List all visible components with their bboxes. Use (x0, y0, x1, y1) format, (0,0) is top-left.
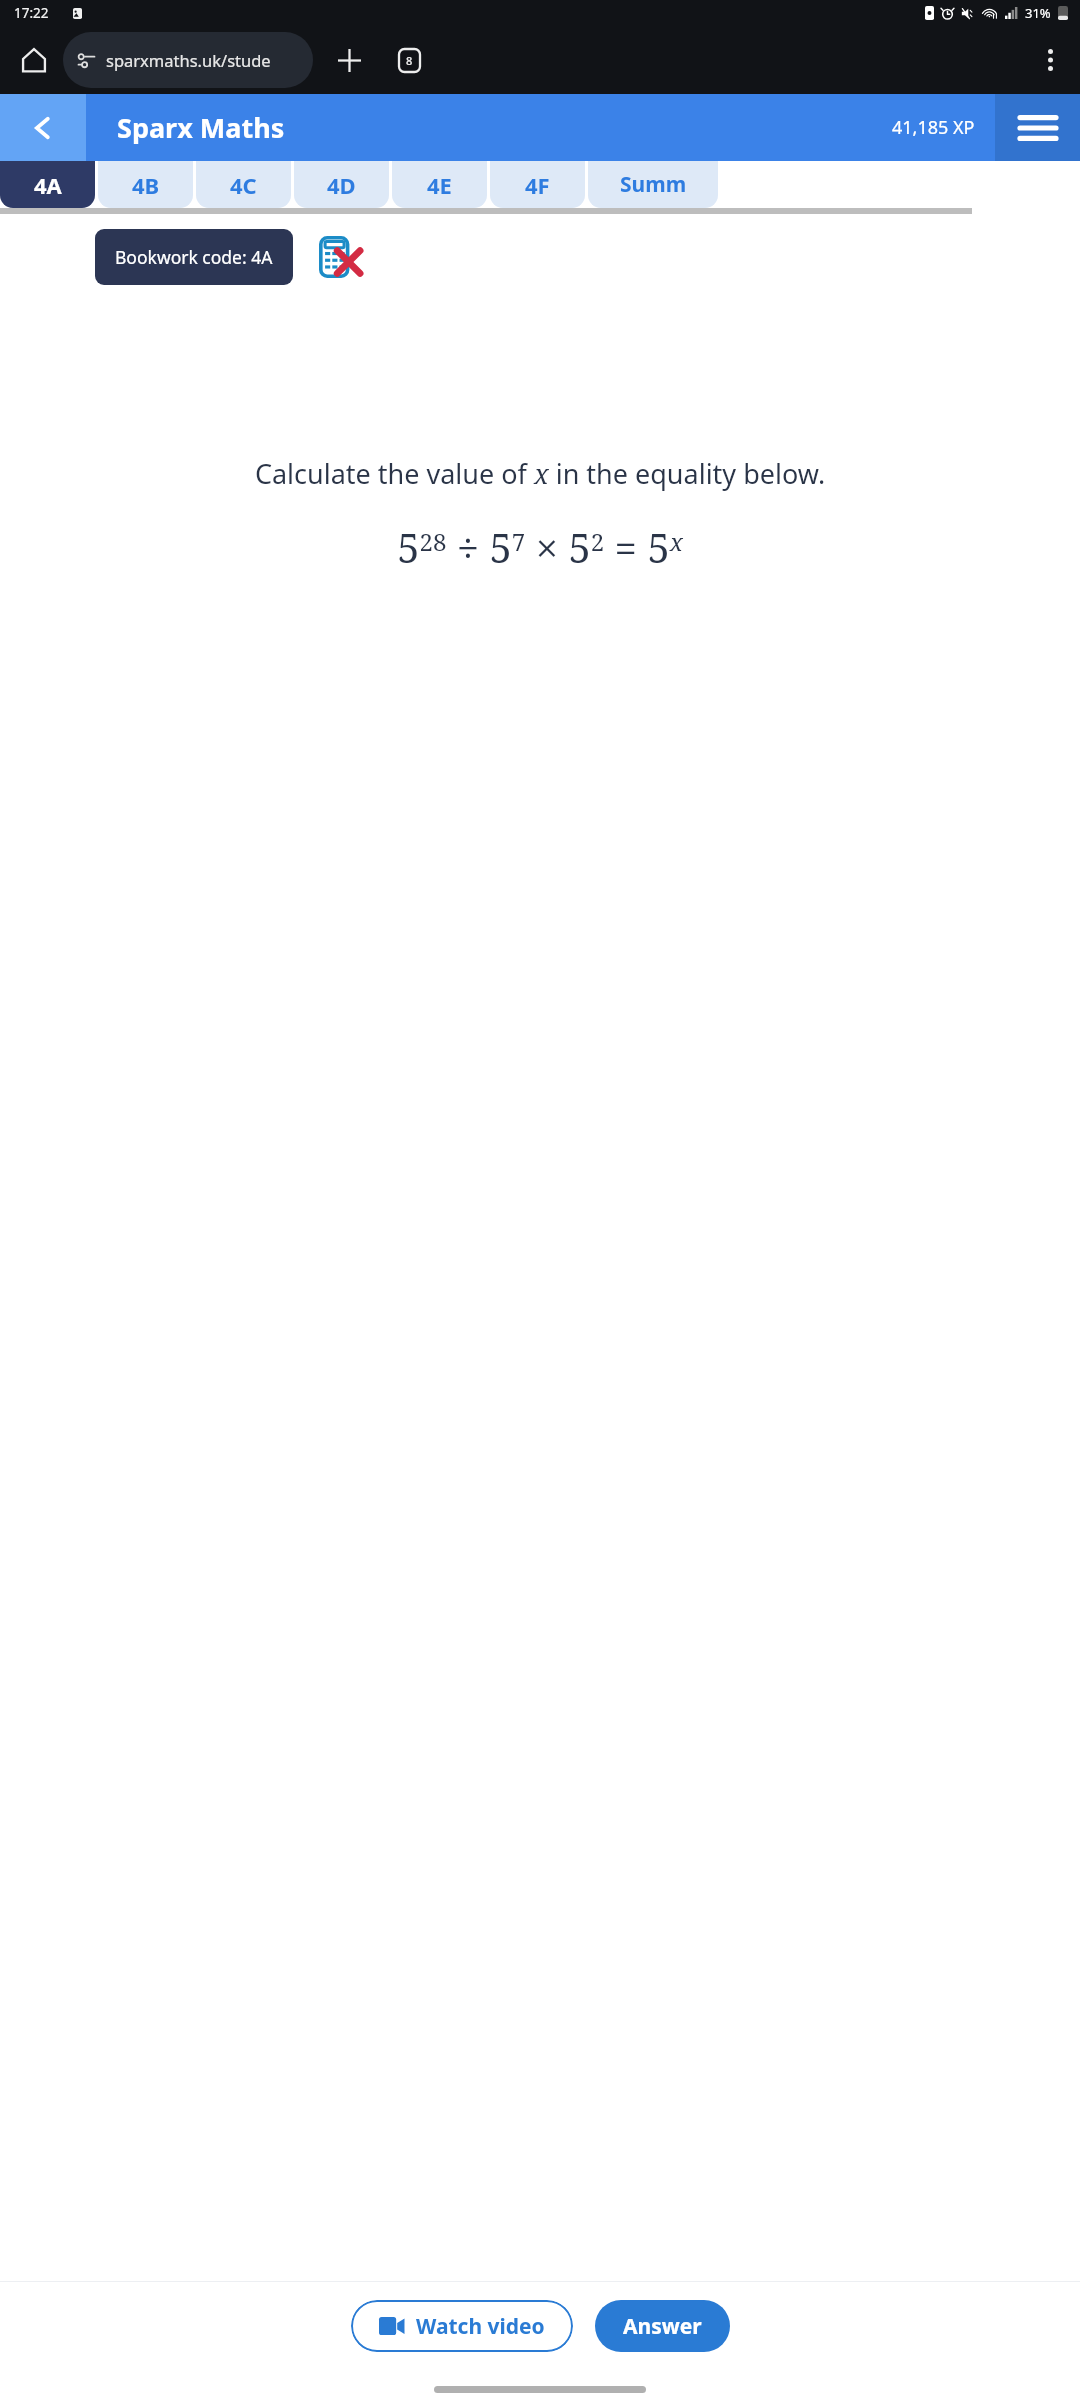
button[interactable]: Menu (995, 94, 1080, 161)
button[interactable]: 4B (98, 161, 193, 208)
staticText: 31% (1025, 4, 1051, 22)
staticText: Bookwork code: 4A (115, 245, 273, 269)
button[interactable]: Home (10, 36, 58, 84)
staticText: 4F (525, 170, 550, 200)
button[interactable]: Tabs (385, 36, 433, 84)
staticText: 41,185 XP (892, 115, 975, 140)
button[interactable]: Summ (588, 161, 718, 208)
button[interactable]: Bookwork code: 4A (95, 229, 293, 285)
staticText: sparxmaths.uk/stude (106, 49, 271, 71)
button[interactable]: More options (1026, 36, 1074, 84)
staticText: Sparx Maths (117, 109, 285, 146)
staticText: 4A (34, 170, 62, 200)
button[interactable]: Back (0, 94, 86, 161)
staticText: Watch video (416, 2312, 545, 2341)
button[interactable]: Watch video (351, 2300, 573, 2352)
staticText: 4C (230, 170, 257, 200)
button[interactable]: 4A (0, 161, 95, 208)
staticText: 8 (406, 53, 413, 68)
button[interactable]: sparxmaths.uk/stude (63, 32, 313, 88)
other: No calculator allowed (319, 236, 357, 278)
staticText: 4D (327, 170, 356, 200)
button[interactable]: 4E (392, 161, 487, 208)
button[interactable]: 4F (490, 161, 585, 208)
button[interactable]: 4C (196, 161, 291, 208)
staticText: 528 ÷ 57 × 52 = 5x (0, 520, 1080, 574)
staticText: Answer (623, 2312, 702, 2341)
staticText: 17:22 (14, 4, 49, 22)
staticText: Calculate the value of x in the equality… (58, 455, 1022, 492)
staticText: 4E (427, 170, 452, 200)
button[interactable]: 4D (294, 161, 389, 208)
staticText: Summ (620, 170, 687, 199)
staticText: 4B (132, 170, 160, 200)
button[interactable]: Answer (595, 2300, 730, 2352)
button[interactable]: New tab (325, 36, 373, 84)
